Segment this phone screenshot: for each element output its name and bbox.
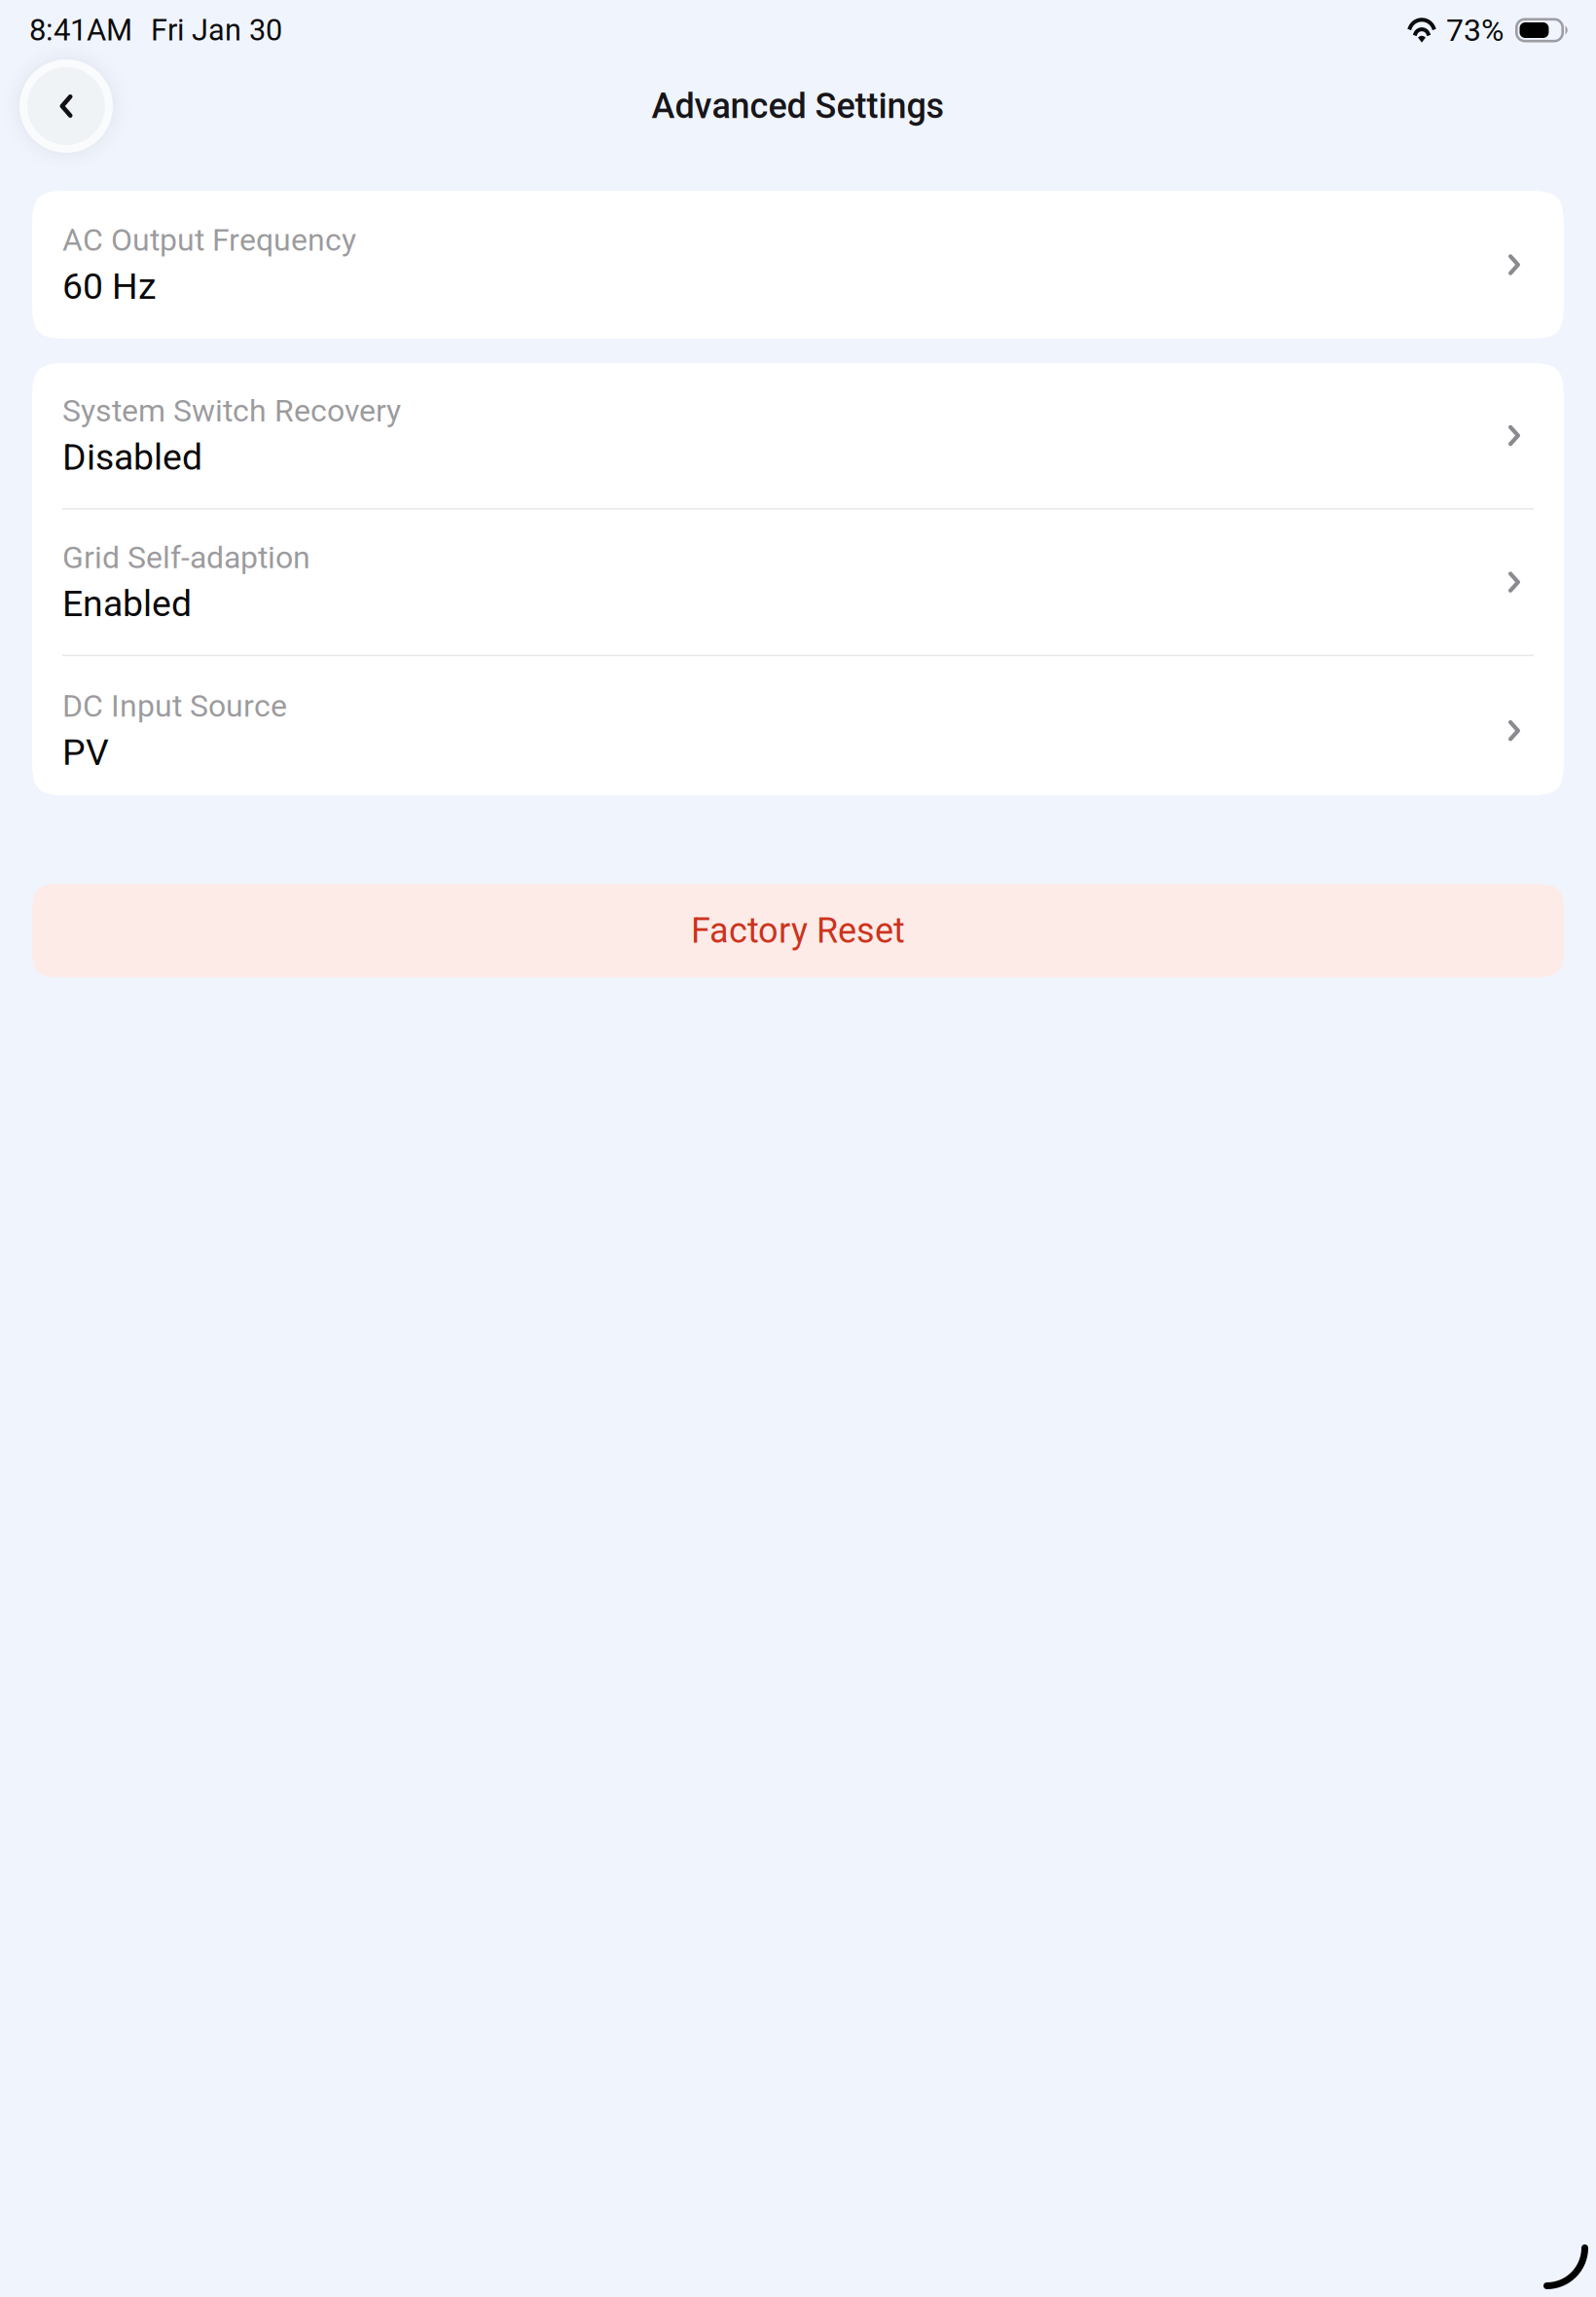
staticText: Factory Reset <box>691 910 905 951</box>
staticText: Advanced Settings <box>652 86 944 127</box>
staticText: System Switch Recovery <box>62 393 401 429</box>
staticText: AC Output Frequency <box>62 222 356 258</box>
staticText: 8:41AM <box>29 12 132 48</box>
staticText: PV <box>62 731 109 774</box>
staticText: Disabled <box>62 436 202 478</box>
button[interactable]: Grid Self-adaption <box>32 510 1564 655</box>
button[interactable]: DC Input Source <box>32 656 1564 795</box>
button[interactable]: System Switch Recovery <box>32 363 1564 508</box>
staticText: Fri Jan 30 <box>151 13 282 48</box>
button[interactable]: AC Output Frequency <box>32 191 1564 339</box>
staticText: 60 Hz <box>62 265 157 308</box>
button[interactable]: Back <box>2 42 130 170</box>
button[interactable]: Factory Reset <box>32 884 1564 977</box>
staticText: Grid Self-adaption <box>62 539 310 576</box>
staticText: DC Input Source <box>62 688 287 724</box>
staticText: 73% <box>1446 12 1504 48</box>
staticText: Enabled <box>62 583 192 625</box>
